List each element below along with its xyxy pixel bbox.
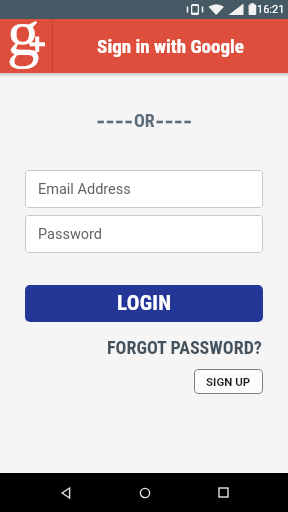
staticText: Password	[38, 226, 103, 243]
button[interactable]	[105, 473, 184, 512]
staticText: OR	[134, 110, 155, 131]
staticText: 16:21	[257, 3, 285, 16]
button[interactable]: Password	[25, 215, 263, 253]
staticText: g	[7, 0, 40, 69]
staticText: LOGIN	[117, 291, 172, 316]
button[interactable]: Email Address	[25, 170, 263, 208]
staticText: SIGN UP	[206, 375, 251, 388]
button[interactable]: SIGN UP	[194, 369, 263, 394]
button[interactable]	[26, 473, 105, 512]
button[interactable]	[184, 473, 263, 512]
button[interactable]: FORGOT PASSWORD?	[107, 336, 262, 358]
staticText: Email Address	[38, 181, 131, 198]
button[interactable]: g	[0, 19, 52, 73]
staticText: FORGOT PASSWORD?	[107, 337, 262, 358]
staticText: Sign in with Google	[97, 35, 244, 57]
button[interactable]: LOGIN	[25, 285, 263, 322]
